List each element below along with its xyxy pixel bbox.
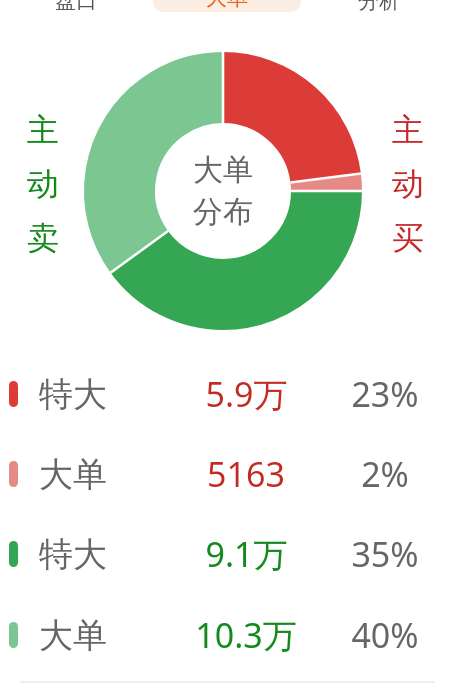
button[interactable]: 大单	[0, 604, 455, 666]
button[interactable]: 特大	[0, 523, 455, 585]
staticText: 23%	[351, 371, 419, 417]
staticText: 5.9万	[205, 371, 288, 417]
button[interactable]: 大单	[153, 0, 301, 12]
staticText: 主	[27, 110, 59, 150]
staticText: 大单	[206, 0, 248, 11]
staticText: 主	[392, 110, 424, 150]
staticText: 动	[392, 164, 424, 204]
staticText: 大单	[39, 453, 107, 496]
button[interactable]: 大单	[0, 443, 455, 505]
button[interactable]: 盘口	[0, 0, 151, 26]
staticText: 9.1万	[205, 531, 288, 577]
staticText: 10.3万	[195, 612, 297, 658]
staticText: 特大	[39, 533, 107, 576]
staticText: 大单	[193, 151, 253, 189]
staticText: 5163	[207, 451, 285, 497]
other: 大单分布饼图	[0, 0, 455, 340]
staticText: 分析	[358, 0, 400, 14]
button[interactable]: 分析	[303, 0, 455, 26]
staticText: 买	[392, 218, 424, 258]
staticText: 特大	[39, 373, 107, 416]
staticText: 2%	[361, 451, 409, 497]
staticText: 大单	[39, 614, 107, 657]
button[interactable]: 特大	[0, 363, 455, 425]
staticText: 卖	[27, 218, 59, 258]
staticText: 40%	[351, 612, 419, 658]
staticText: 分布	[193, 193, 253, 231]
staticText: 盘口	[55, 0, 97, 14]
staticText: 动	[27, 164, 59, 204]
staticText: 35%	[351, 531, 419, 577]
